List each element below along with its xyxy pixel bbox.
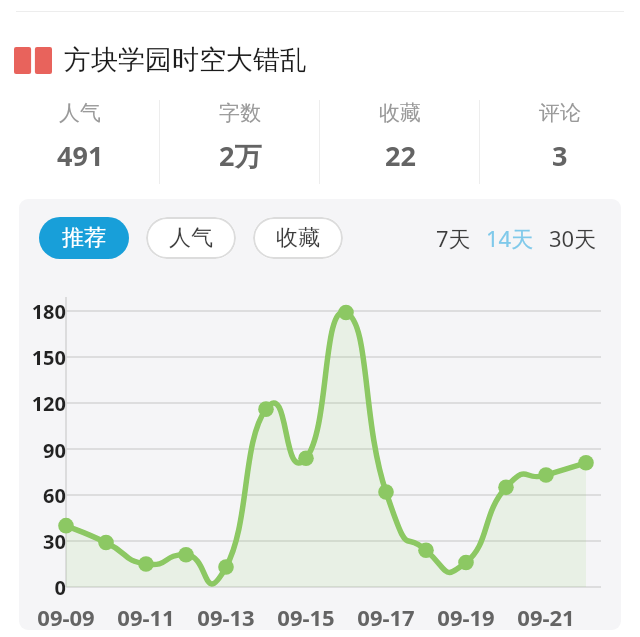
staticText: 120 xyxy=(19,390,66,417)
staticText: 7天 xyxy=(436,223,471,253)
staticText: 人气 xyxy=(169,224,213,252)
button[interactable]: 7天 xyxy=(434,217,473,259)
button[interactable]: 14天 xyxy=(484,217,536,259)
staticText: 180 xyxy=(19,298,66,325)
staticText: 491 xyxy=(57,137,104,174)
staticText: 09-13 xyxy=(181,602,271,630)
button[interactable]: 字数 xyxy=(160,100,320,184)
button[interactable]: 评论 xyxy=(480,100,640,184)
staticText: 60 xyxy=(19,482,66,509)
staticText: 30 xyxy=(19,528,66,555)
button[interactable]: 人气 xyxy=(0,100,160,184)
staticText: 09-15 xyxy=(261,602,351,630)
staticText: 09-21 xyxy=(501,602,591,630)
staticText: 2万 xyxy=(219,137,262,174)
staticText: 0 xyxy=(19,574,66,601)
staticText: 09-11 xyxy=(101,602,191,630)
button[interactable]: 推荐 xyxy=(39,217,129,259)
staticText: 推荐 xyxy=(62,224,106,252)
button[interactable]: 收藏 xyxy=(320,100,480,184)
staticText: 评论 xyxy=(539,100,581,126)
staticText: 人气 xyxy=(59,100,101,126)
staticText: 150 xyxy=(19,344,66,371)
staticText: 字数 xyxy=(219,100,261,126)
button[interactable]: 30天 xyxy=(547,217,599,259)
staticText: 09-19 xyxy=(421,602,511,630)
staticText: 14天 xyxy=(486,223,534,253)
staticText: 09-09 xyxy=(21,602,111,630)
staticText: 收藏 xyxy=(276,224,320,252)
staticText: 90 xyxy=(19,437,66,464)
button[interactable]: 人气 xyxy=(146,217,236,259)
staticText: 方块学园时空大错乱 xyxy=(64,43,307,77)
staticText: 3 xyxy=(552,137,568,174)
staticText: 收藏 xyxy=(379,100,421,126)
button[interactable]: 收藏 xyxy=(253,217,343,259)
staticText: 22 xyxy=(385,137,416,174)
staticText: 09-17 xyxy=(341,602,431,630)
other: Book xyxy=(14,47,52,74)
staticText: 30天 xyxy=(549,223,597,253)
